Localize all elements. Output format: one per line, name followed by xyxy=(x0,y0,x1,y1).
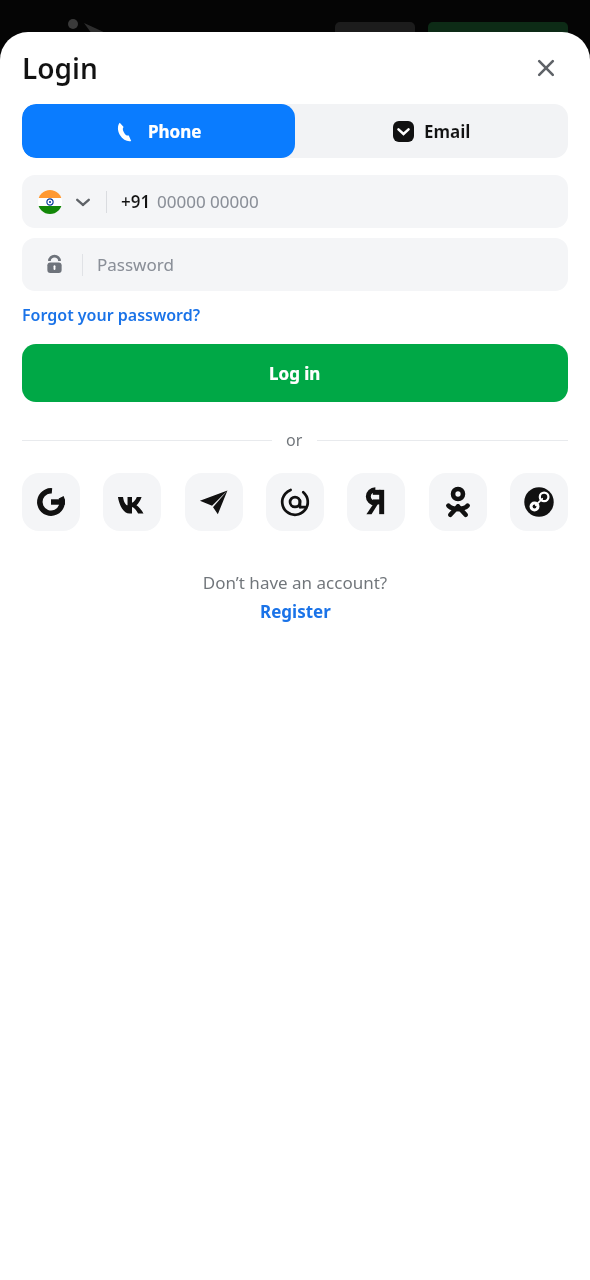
staticText: Phone xyxy=(148,120,202,143)
button[interactable]: Phone xyxy=(22,104,295,158)
button[interactable]: Sign in with Google xyxy=(22,473,80,531)
button[interactable]: Sign in with Telegram xyxy=(185,473,243,531)
staticText: Password xyxy=(97,253,174,276)
staticText: +91 xyxy=(121,190,151,213)
staticText: Don’t have an account? xyxy=(0,571,590,594)
button[interactable]: +91 xyxy=(22,175,568,228)
button[interactable]: Sign in with Yandex xyxy=(347,473,405,531)
staticText: Log in xyxy=(269,362,321,385)
button[interactable]: Register xyxy=(260,600,331,623)
button[interactable]: Password xyxy=(22,238,568,291)
staticText: Register xyxy=(260,600,331,623)
staticText: Login xyxy=(22,49,98,87)
button[interactable]: Close xyxy=(528,50,564,86)
staticText: Forgot your password? xyxy=(22,304,201,326)
button[interactable]: Sign in with Odnoklassniki xyxy=(429,473,487,531)
button[interactable]: Sign in with VK xyxy=(103,473,161,531)
staticText: Email xyxy=(424,120,471,143)
button[interactable]: Sign in with Mail.ru xyxy=(266,473,324,531)
button[interactable]: Sign in with Steam xyxy=(510,473,568,531)
button[interactable]: Forgot your password? xyxy=(22,304,201,326)
staticText: or xyxy=(286,429,303,451)
button[interactable]: Email xyxy=(295,104,568,158)
button[interactable]: Log in xyxy=(22,344,568,402)
staticText: 00000 00000 xyxy=(157,190,259,213)
